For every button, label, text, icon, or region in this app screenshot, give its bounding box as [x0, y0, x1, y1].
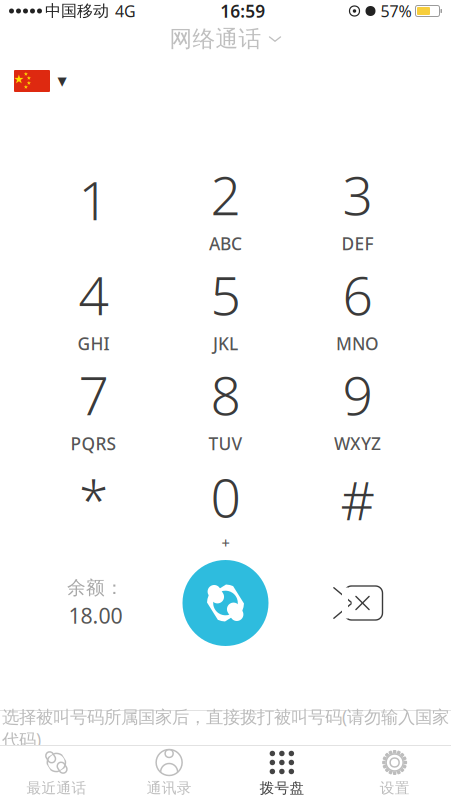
button[interactable]: 余额：	[20, 557, 170, 649]
button[interactable]: 6	[291, 261, 423, 353]
staticText: 选择被叫号码所属国家后，直接拨打被叫号码(请勿输入国家代码)	[2, 705, 449, 751]
staticText: +	[221, 533, 229, 553]
staticText: 7	[78, 359, 108, 430]
button[interactable]: #	[291, 461, 423, 553]
staticText: 余额：	[67, 576, 124, 599]
staticText: 4G	[115, 0, 136, 22]
button[interactable]: *	[27, 461, 159, 553]
staticText: MNO	[336, 332, 379, 355]
staticText: 拨号盘	[259, 779, 304, 797]
staticText: 16:59	[220, 0, 265, 22]
button[interactable]: 4	[27, 261, 159, 353]
staticText: 设置	[380, 779, 410, 797]
button[interactable]: 设置	[338, 746, 451, 800]
button[interactable]: 0	[159, 461, 291, 553]
staticText: 0	[210, 461, 240, 532]
button[interactable]: 网络通话	[169, 22, 281, 56]
staticText: ★	[26, 80, 31, 86]
button[interactable]: 1	[27, 161, 159, 253]
staticText: 9	[342, 359, 372, 430]
button[interactable]: 2	[159, 161, 291, 253]
staticText: 18.00	[68, 601, 122, 630]
staticText: 6	[342, 259, 372, 330]
staticText: *	[79, 464, 108, 535]
staticText: 5	[210, 259, 240, 330]
button[interactable]: 最近通话	[0, 746, 113, 800]
staticText: 1	[78, 164, 108, 235]
staticText: 2	[210, 159, 240, 230]
staticText: #	[340, 464, 374, 535]
staticText: 8	[210, 359, 240, 430]
button[interactable]: Call	[170, 557, 280, 649]
button[interactable]: 拨号盘	[225, 746, 338, 800]
button[interactable]: ★	[0, 62, 81, 100]
button[interactable]: 通讯录	[113, 746, 226, 800]
staticText: 4	[78, 259, 108, 330]
staticText: ▼	[57, 74, 66, 88]
staticText: ★	[13, 72, 24, 86]
staticText: ★	[23, 71, 28, 77]
staticText: 中国移动	[45, 1, 109, 21]
button[interactable]: 3	[291, 161, 423, 253]
button[interactable]: 9	[291, 361, 423, 453]
staticText: PQRS	[70, 432, 116, 455]
staticText: 网络通话	[169, 25, 261, 53]
button[interactable]: 7	[27, 361, 159, 453]
button[interactable]: 5	[159, 261, 291, 353]
staticText: ★	[26, 75, 31, 81]
staticText: GHI	[77, 332, 109, 355]
staticText: ★	[23, 84, 28, 90]
staticText: JKL	[213, 332, 238, 355]
button[interactable]: Delete	[280, 557, 430, 649]
staticText: 最近通话	[26, 779, 86, 797]
staticText: TUV	[208, 432, 242, 455]
staticText: 3	[342, 159, 372, 230]
staticText: ABC	[209, 232, 242, 255]
staticText: WXYZ	[334, 432, 381, 455]
staticText: 通讯录	[147, 779, 192, 797]
staticText: 57%	[380, 0, 411, 22]
staticText: DEF	[341, 232, 373, 255]
button[interactable]: 8	[159, 361, 291, 453]
